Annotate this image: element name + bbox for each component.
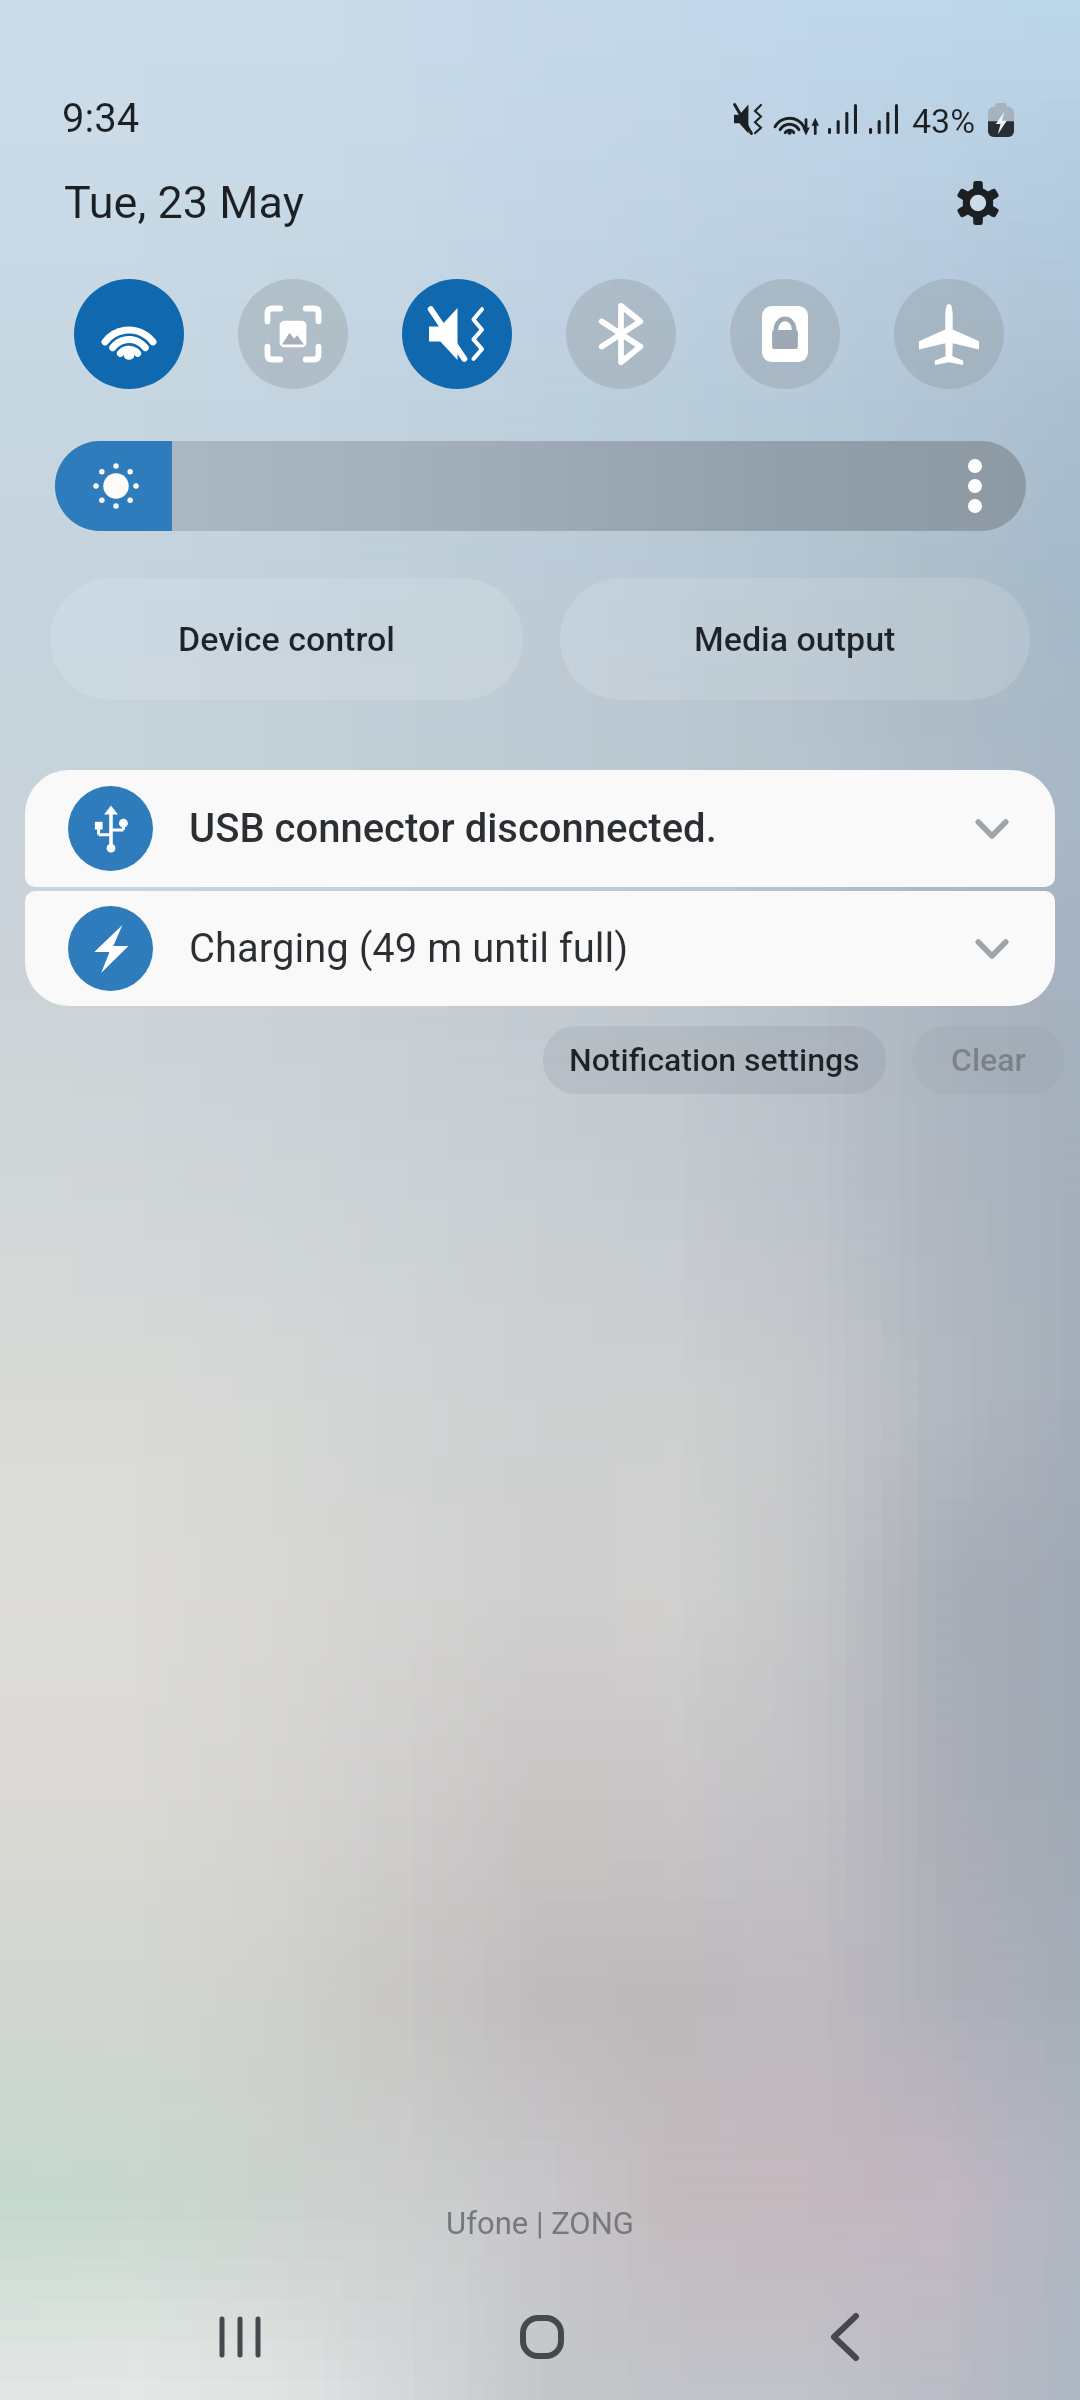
button[interactable]: Recent apps bbox=[180, 2274, 300, 2400]
button[interactable]: Airplane mode bbox=[894, 279, 1004, 389]
button[interactable]: Clear bbox=[912, 1026, 1064, 1094]
staticText: USB connector disconnected. bbox=[189, 805, 717, 852]
button[interactable]: Notification settings bbox=[543, 1026, 886, 1094]
button[interactable]: Settings bbox=[946, 171, 1010, 235]
staticText: Clear bbox=[951, 1041, 1026, 1079]
button[interactable]: Charging (49 m until full) bbox=[25, 891, 1055, 1006]
staticText: Device control bbox=[178, 619, 395, 659]
button[interactable]: Home bbox=[482, 2274, 602, 2400]
staticText: 43% bbox=[912, 101, 976, 141]
staticText: 9:34 bbox=[62, 95, 140, 142]
staticText: Notification settings bbox=[569, 1041, 860, 1079]
other: Expand bbox=[976, 938, 1008, 960]
staticText: Tue, 23 May bbox=[64, 176, 304, 229]
staticText: Media output bbox=[694, 619, 896, 659]
button[interactable]: Screenshot bbox=[238, 279, 348, 389]
staticText: Ufone | ZONG bbox=[0, 2205, 1080, 2241]
button[interactable]: Auto rotate lock bbox=[730, 279, 840, 389]
other: Expand bbox=[976, 818, 1008, 840]
button[interactable]: Device control bbox=[50, 578, 523, 700]
button[interactable]: Brightness bbox=[55, 441, 1026, 531]
staticText: Charging (49 m until full) bbox=[189, 925, 629, 972]
button[interactable]: Wi-Fi bbox=[74, 279, 184, 389]
button[interactable]: USB connector disconnected. bbox=[25, 770, 1055, 887]
button[interactable]: Back bbox=[785, 2274, 905, 2400]
button[interactable]: Mute bbox=[402, 279, 512, 389]
button[interactable]: Media output bbox=[560, 578, 1030, 700]
button[interactable]: Bluetooth bbox=[566, 279, 676, 389]
